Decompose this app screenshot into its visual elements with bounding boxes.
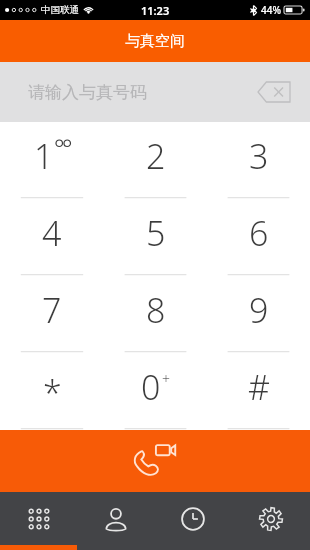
button[interactable]: 2 [104,122,207,199]
button[interactable]: Recents [154,492,232,545]
button[interactable]: 6 [207,199,310,276]
staticText: 5 [146,210,166,256]
staticText: * [43,370,62,416]
button[interactable]: 4 [0,199,104,276]
staticText: 11:23 [141,3,170,18]
button[interactable]: 9 [207,276,310,353]
button[interactable]: Video call [0,430,310,492]
button[interactable]: 8 [104,276,207,353]
staticText: 与真空间 [125,32,185,51]
button[interactable]: 5 [104,199,207,276]
button[interactable]: 0 [104,353,207,430]
button[interactable]: 3 [207,122,310,199]
staticText: 3 [249,133,269,179]
staticText: 44% [261,3,281,17]
staticText: + [162,369,170,388]
staticText: 8 [146,287,166,333]
staticText: 中国联通 [41,4,79,16]
staticText: 6 [249,210,269,256]
button[interactable]: 1 [0,122,104,199]
staticText: 0 [141,364,161,410]
staticText: 9 [249,287,269,333]
button[interactable]: Settings [232,492,310,545]
staticText: 7 [42,287,62,333]
staticText: 2 [146,133,166,179]
staticText: 4 [42,210,62,256]
staticText: 请输入与真号码 [28,82,147,103]
button[interactable]: Keypad [0,492,77,545]
staticText: 1 [34,133,54,179]
button[interactable]: # [207,353,310,430]
button[interactable]: 7 [0,276,104,353]
button[interactable]: Contacts [77,492,154,545]
staticText: # [248,364,270,410]
button[interactable]: Backspace [254,77,294,107]
button[interactable]: * [0,353,104,430]
